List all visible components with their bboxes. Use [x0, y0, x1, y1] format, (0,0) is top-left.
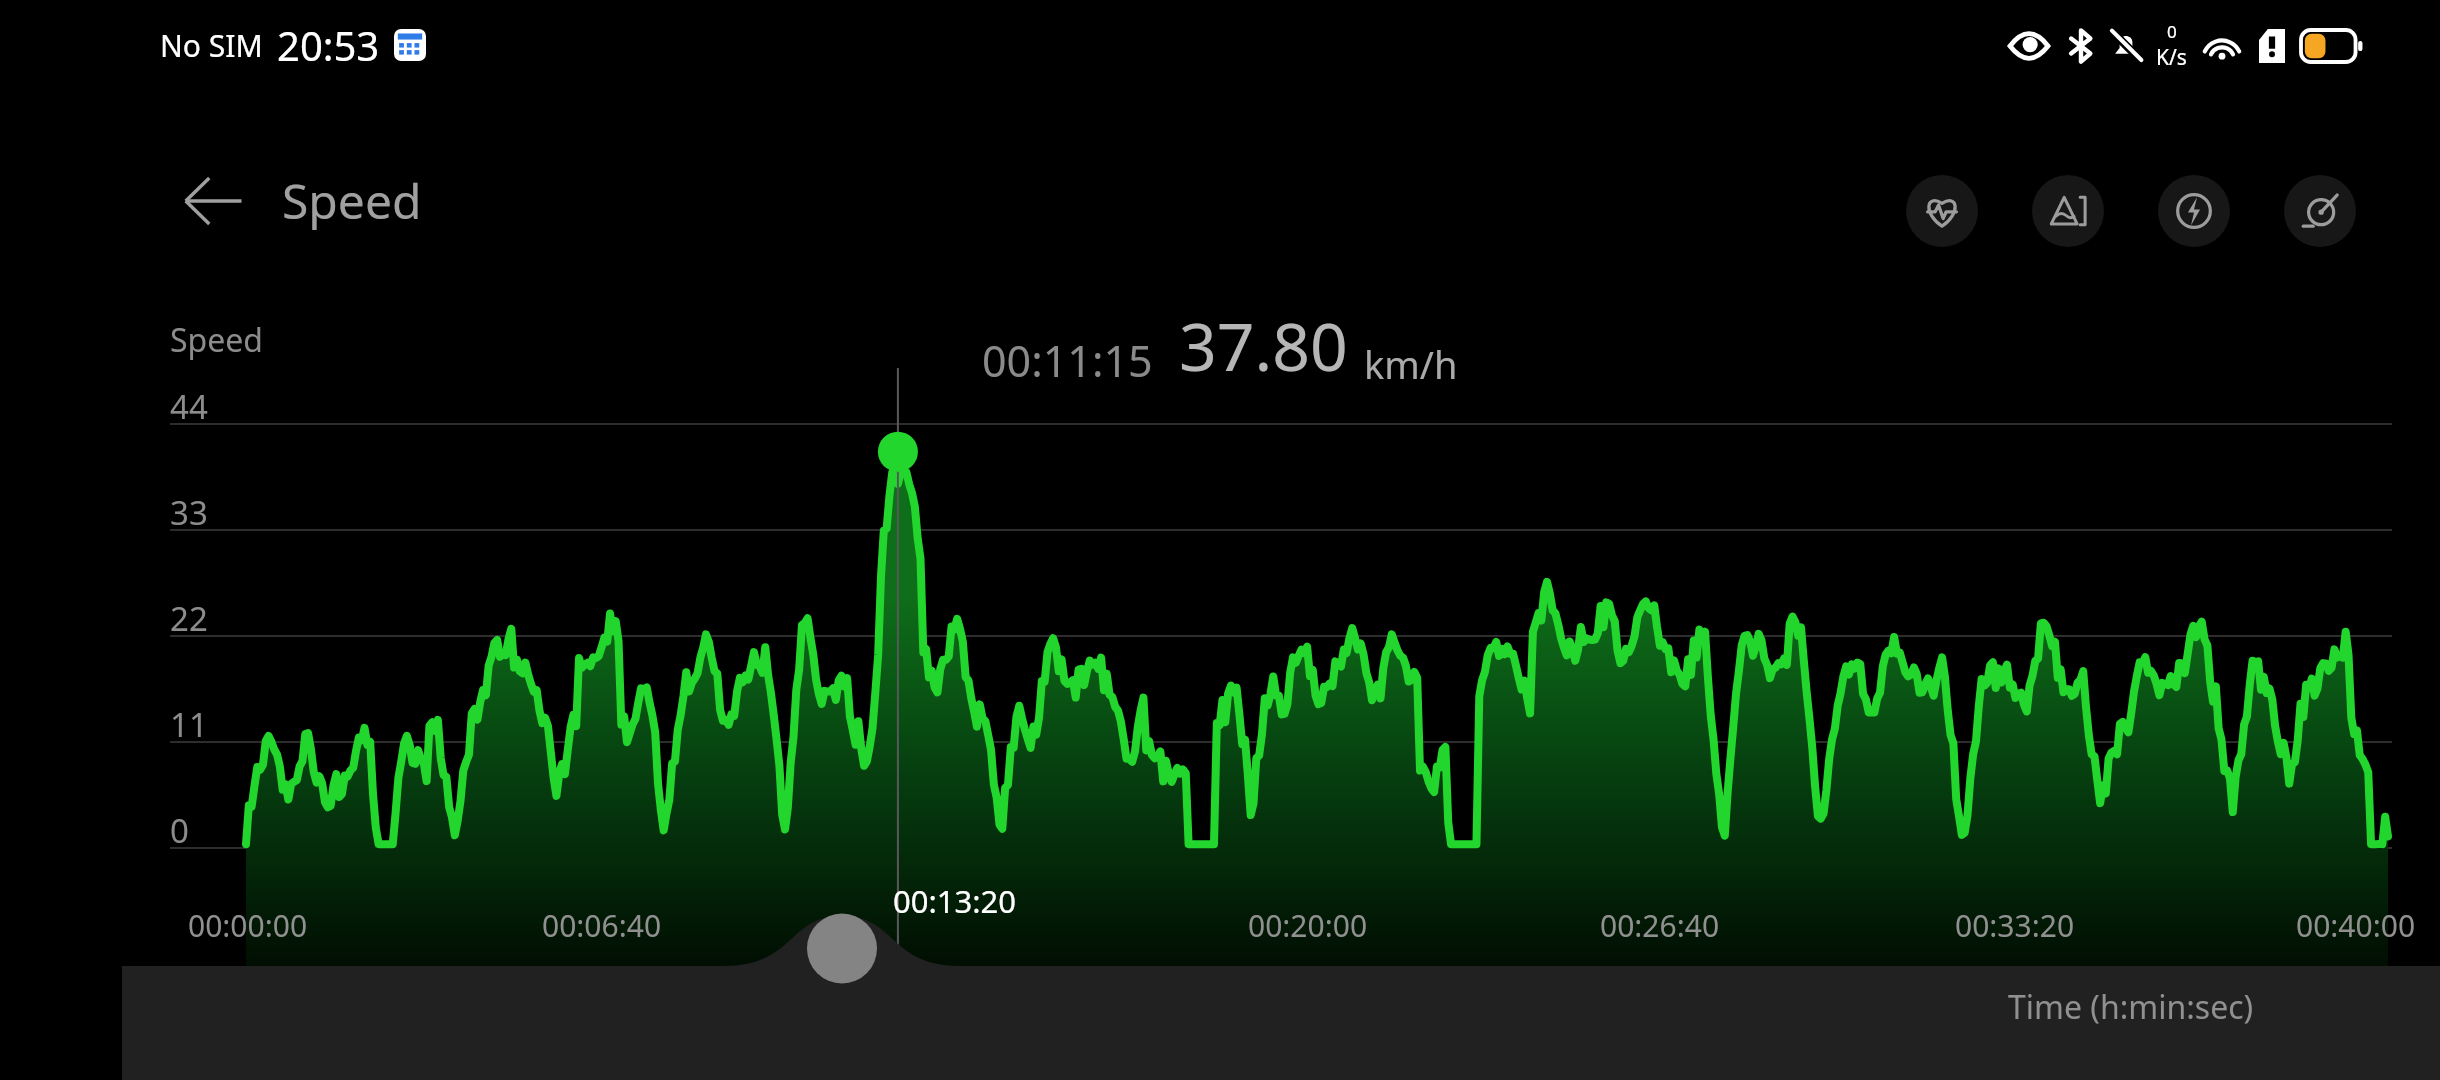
- staticText: 00:06:40: [542, 905, 662, 946]
- staticText: 00:26:40: [1600, 905, 1720, 946]
- staticText: 00:20:00: [1248, 905, 1368, 946]
- button[interactable]: Speed graph: [2284, 175, 2356, 247]
- staticText: 44: [170, 384, 208, 429]
- staticText: No SIM: [160, 25, 263, 66]
- button[interactable]: Heart rate: [1906, 175, 1978, 247]
- staticText: 0: [170, 808, 189, 853]
- button[interactable]: Power: [2158, 175, 2230, 247]
- button[interactable]: Back: [182, 168, 422, 233]
- staticText: Time (h:min:sec): [2008, 985, 2254, 1029]
- staticText: 37.80: [1179, 300, 1348, 390]
- staticText: 22: [170, 596, 208, 641]
- staticText: Speed: [170, 318, 264, 362]
- staticText: km/h: [1364, 338, 1458, 390]
- staticText: 20:53: [277, 18, 380, 72]
- staticText: Speed: [282, 168, 422, 233]
- staticText: 00:11:15: [982, 331, 1153, 390]
- staticText: 00:33:20: [1955, 905, 2075, 946]
- button[interactable]: Scrub timeline: [820, 935, 900, 1015]
- other: Back: [182, 170, 244, 232]
- button[interactable]: Altitude: [2032, 175, 2104, 247]
- staticText: 33: [170, 490, 208, 535]
- staticText: 00:13:20: [893, 880, 1017, 922]
- staticText: K/s: [2156, 43, 2187, 72]
- staticText: 11: [170, 702, 208, 747]
- staticText: 00:40:00: [2296, 905, 2416, 946]
- staticText: 0: [2167, 20, 2177, 43]
- staticText: 00:00:00: [188, 905, 308, 946]
